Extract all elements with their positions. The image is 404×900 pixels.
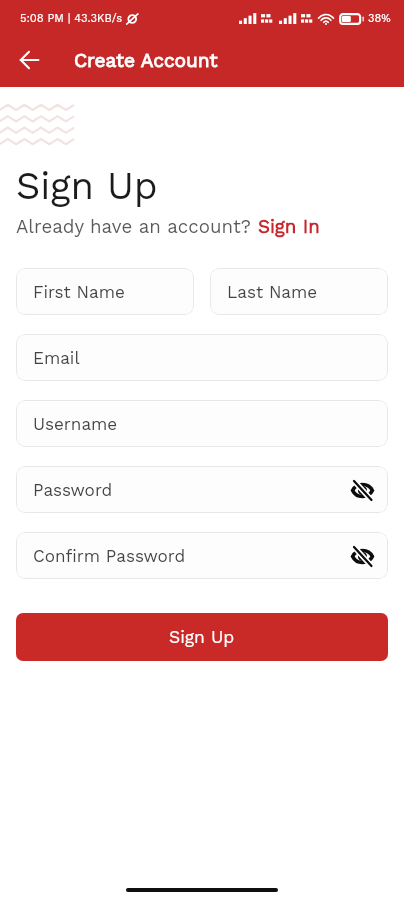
staticText: 5:08 PM | 43.3KB/s: [20, 12, 123, 25]
button[interactable]: Confirm Password: [16, 532, 388, 579]
button[interactable]: Username: [16, 400, 388, 447]
staticText: First Name: [33, 282, 125, 302]
staticText: Username: [33, 414, 118, 434]
button[interactable]: Sign Up: [16, 613, 388, 661]
button[interactable]: Last Name: [210, 268, 388, 315]
button[interactable]: Show password: [350, 478, 374, 502]
button[interactable]: Show password: [350, 544, 374, 568]
staticText: Create Account: [74, 49, 218, 71]
button[interactable]: Sign In: [258, 216, 320, 238]
staticText: Already have an account?: [16, 216, 258, 238]
staticText: Email: [33, 348, 80, 368]
staticText: Confirm Password: [33, 546, 186, 566]
staticText: Password: [33, 480, 113, 500]
staticText: Last Name: [227, 282, 318, 302]
staticText: Sign Up: [16, 164, 158, 209]
button[interactable]: Back: [0, 34, 58, 85]
button[interactable]: First Name: [16, 268, 194, 315]
button[interactable]: Password: [16, 466, 388, 513]
staticText: Sign Up: [169, 627, 235, 648]
button[interactable]: Email: [16, 334, 388, 381]
staticText: 38%: [368, 12, 391, 25]
